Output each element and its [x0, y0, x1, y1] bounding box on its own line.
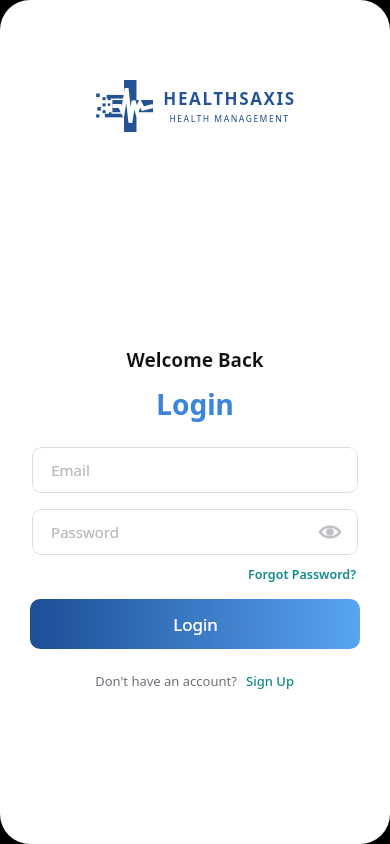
staticText: Email	[51, 460, 90, 480]
staticText: Password	[51, 522, 119, 542]
button[interactable]: Forgot Password?	[246, 564, 358, 585]
button[interactable]: Password	[32, 509, 358, 555]
staticText: Login	[156, 385, 234, 423]
staticText: Don't have an account?	[95, 672, 237, 690]
staticText: Welcome Back	[126, 347, 264, 373]
staticText: Sign Up	[246, 672, 294, 690]
button[interactable]: Sign Up	[244, 670, 296, 692]
button[interactable]: Login	[30, 599, 360, 649]
staticText: HEALTH MANAGEMENT	[169, 113, 290, 125]
staticText: Forgot Password?	[248, 566, 356, 583]
staticText: HEALTHSAXIS	[163, 87, 296, 110]
button[interactable]: Show password	[318, 520, 342, 544]
button[interactable]: Email	[32, 447, 358, 493]
staticText: Login	[173, 613, 218, 636]
